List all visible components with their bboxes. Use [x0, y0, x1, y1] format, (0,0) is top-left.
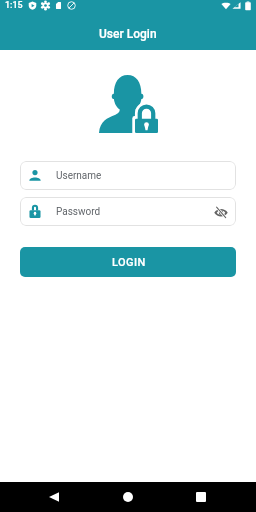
button[interactable]: Password — [20, 197, 236, 226]
button[interactable]: Recents — [181, 486, 221, 508]
button[interactable]: LOGIN — [20, 247, 236, 277]
staticText: 1:15 — [5, 0, 23, 11]
staticText: Username — [56, 170, 102, 182]
button[interactable]: Back — [34, 486, 74, 508]
button[interactable]: Show password — [209, 200, 233, 224]
staticText: Password — [56, 206, 101, 218]
staticText: LOGIN — [112, 256, 146, 269]
button[interactable]: Home — [108, 486, 148, 508]
staticText: User Login — [99, 27, 157, 41]
button[interactable]: Username — [20, 161, 236, 190]
